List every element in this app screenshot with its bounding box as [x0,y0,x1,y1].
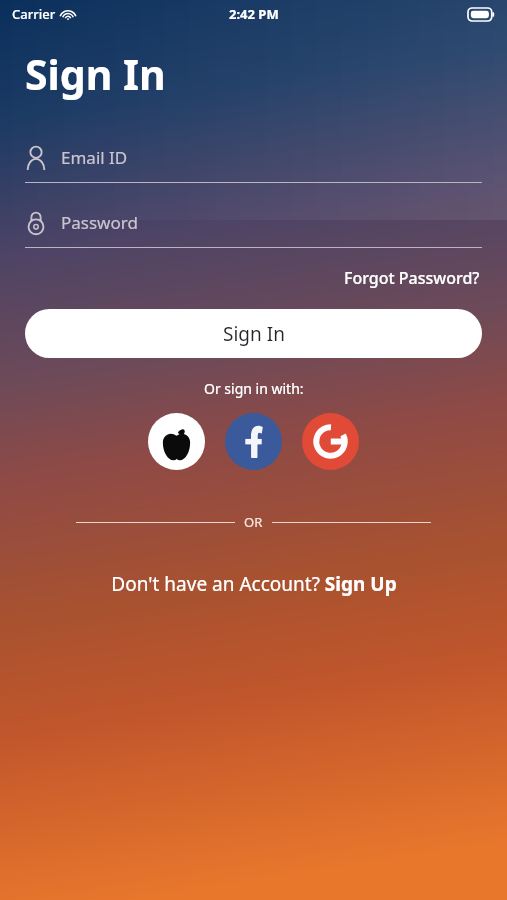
staticText: Sign In [25,46,166,102]
button[interactable]: Sign in with Google [302,413,359,470]
staticText: Password [61,211,138,234]
button[interactable]: Sign in with Facebook [225,413,282,470]
staticText: OR [244,513,263,531]
staticText: Or sign in with: [204,379,304,398]
staticText: Email ID [61,146,128,169]
button[interactable]: Password [25,205,482,248]
button[interactable]: Email [25,140,482,183]
staticText: Carrier [12,5,56,23]
button[interactable]: Don't have an Account? Sign Up [105,567,403,601]
staticText: Forgot Password? [344,267,480,289]
staticText: 2:42 PM [229,5,279,23]
button[interactable]: Sign in with Apple [148,413,205,470]
button[interactable]: Sign In [25,309,482,358]
button[interactable]: Forgot Password? [342,264,482,292]
staticText: Sign In [223,321,285,347]
staticText: Don't have an Account? Sign Up [111,571,397,597]
